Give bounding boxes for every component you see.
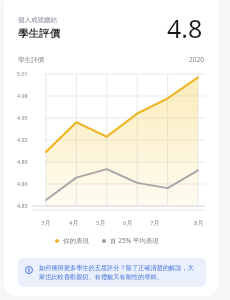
button[interactable]: 首 25% 平均表現 (102, 235, 159, 246)
staticText: 4.98 (17, 92, 28, 99)
button[interactable]: Information (18, 258, 206, 287)
staticText: 2020 (189, 55, 204, 64)
staticText: 6月 (123, 219, 133, 227)
staticText: 4.86 (17, 180, 28, 187)
staticText: 4.8 (167, 11, 203, 45)
staticText: 4.89 (17, 158, 28, 165)
staticText: 4.83 (17, 202, 28, 209)
staticText: 如何獲得更多學生的五星評分？除了正確清楚的解說，大家也比較喜歡親切、有禮貌又有耐… (39, 264, 198, 281)
staticText: 個人成就總結 (18, 16, 57, 24)
staticText: 4.92 (17, 136, 28, 143)
staticText: 學生評價 (18, 56, 44, 64)
staticText: 7月 (150, 219, 160, 227)
staticText: 5月 (96, 219, 106, 227)
other: Information (25, 266, 33, 274)
staticText: 學生評價 (18, 27, 60, 40)
staticText: 5.01 (17, 70, 28, 77)
staticText: 4月 (69, 219, 79, 227)
staticText: 8月 (194, 219, 204, 227)
staticText: 3月 (41, 219, 51, 227)
staticText: 首 25% 平均表現 (110, 236, 159, 245)
staticText: 你的表現 (63, 237, 89, 245)
staticText: 4.95 (17, 114, 28, 121)
button[interactable]: 你的表現 (55, 236, 89, 246)
